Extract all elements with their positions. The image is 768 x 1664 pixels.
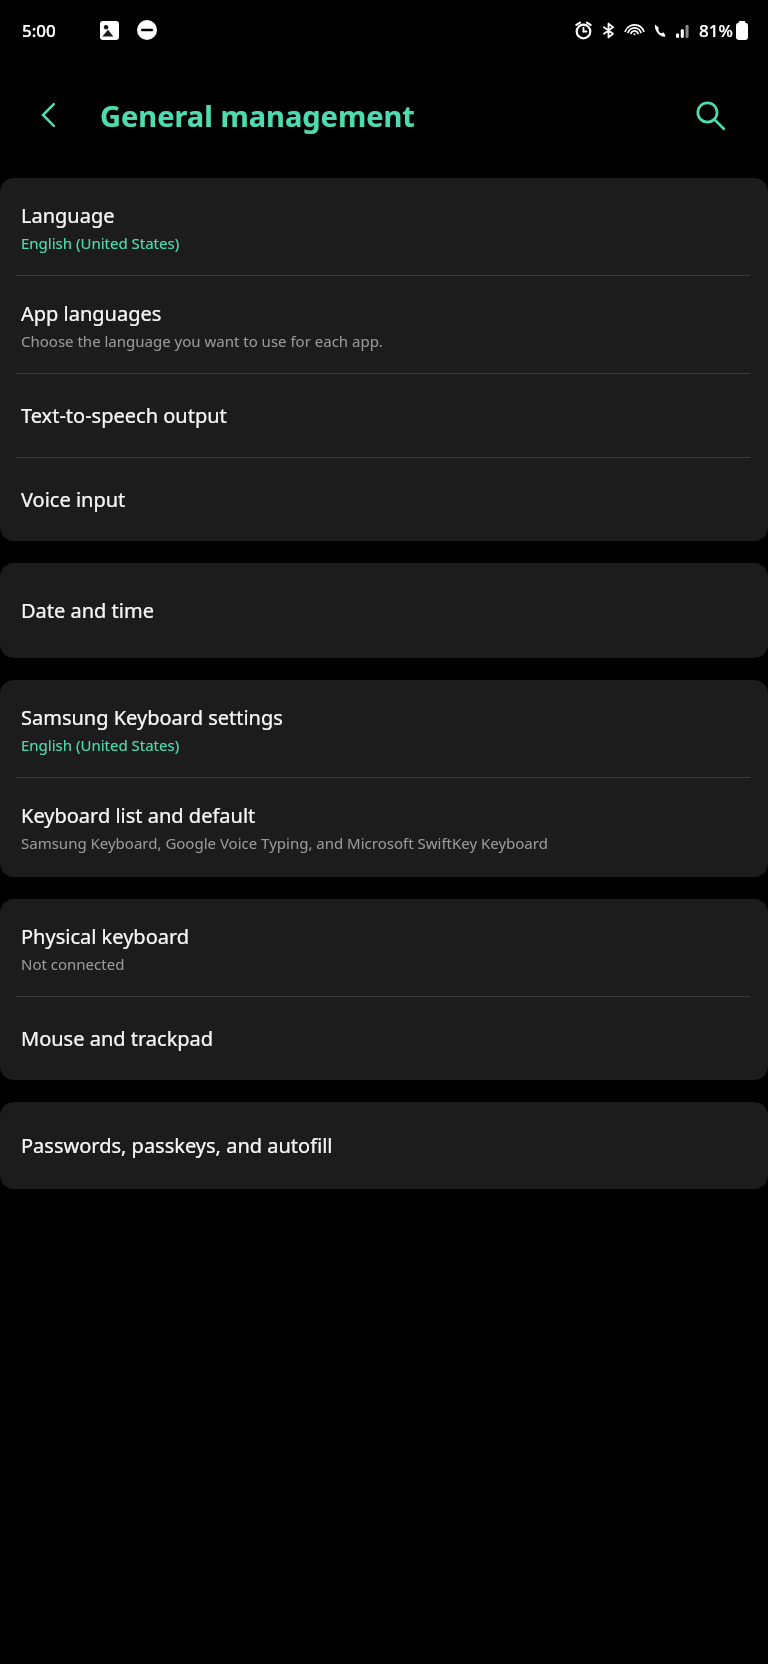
staticText: Passwords, passkeys, and autofill [21, 1132, 333, 1159]
button[interactable]: Text-to-speech output [0, 374, 768, 457]
staticText: 81% [699, 19, 733, 42]
button[interactable]: Date and time [0, 563, 768, 658]
button[interactable]: Back [18, 84, 80, 146]
staticText: 5:00 [22, 19, 56, 42]
staticText: Physical keyboard [21, 923, 190, 950]
staticText: Keyboard list and default [21, 802, 256, 829]
staticText: Text-to-speech output [21, 402, 227, 429]
staticText: Choose the language you want to use for … [21, 331, 383, 351]
staticText: Language [21, 202, 115, 229]
button[interactable]: Mouse and trackpad [0, 997, 768, 1080]
staticText: Samsung Keyboard settings [21, 704, 283, 731]
button[interactable]: Keyboard list and default [0, 778, 768, 877]
staticText: General management [100, 96, 415, 135]
staticText: English (United States) [21, 233, 180, 253]
staticText: Mouse and trackpad [21, 1025, 214, 1052]
staticText: App languages [21, 300, 162, 327]
staticText: English (United States) [21, 735, 180, 755]
button[interactable]: Search [682, 87, 738, 143]
staticText: Date and time [21, 597, 154, 624]
staticText: Samsung Keyboard, Google Voice Typing, a… [21, 833, 548, 853]
button[interactable]: Physical keyboard [0, 899, 768, 996]
button[interactable]: Samsung Keyboard settings [0, 680, 768, 777]
button[interactable]: Voice input [0, 458, 768, 541]
staticText: Not connected [21, 954, 125, 974]
button[interactable]: Language [0, 178, 768, 275]
staticText: Voice input [21, 486, 126, 513]
button[interactable]: App languages [0, 276, 768, 373]
button[interactable]: Passwords, passkeys, and autofill [0, 1102, 768, 1189]
